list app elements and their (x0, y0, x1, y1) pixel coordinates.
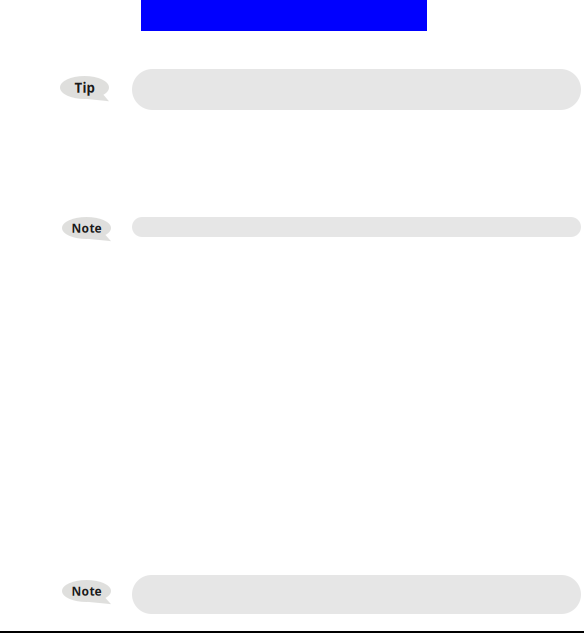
button[interactable]: Tip (60, 69, 581, 110)
staticText: Note (71, 220, 101, 236)
staticText: Tip (74, 79, 94, 96)
staticText: Note (71, 583, 101, 599)
button[interactable]: Note (62, 575, 581, 614)
button[interactable]: Note (62, 217, 581, 241)
